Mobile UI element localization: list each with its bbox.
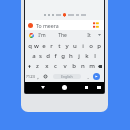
staticText: p xyxy=(97,42,101,50)
button[interactable]: More suggestions xyxy=(95,30,103,40)
staticText: q xyxy=(28,42,32,50)
button[interactable]: It xyxy=(83,30,95,40)
button[interactable]: c xyxy=(51,61,60,71)
staticText: . xyxy=(87,73,89,81)
staticText: a xyxy=(32,52,36,60)
button[interactable]: Space xyxy=(53,74,81,79)
staticText: x xyxy=(45,62,49,70)
staticText: h xyxy=(69,52,73,60)
button[interactable]: i xyxy=(79,40,87,51)
button[interactable]: , xyxy=(34,71,41,82)
button[interactable]: e xyxy=(40,40,47,51)
staticText: o xyxy=(89,42,93,50)
button[interactable]: x xyxy=(42,61,51,71)
button[interactable]: g xyxy=(59,51,67,61)
button[interactable]: The xyxy=(56,30,68,40)
staticText: c xyxy=(54,62,57,70)
staticText: e xyxy=(42,42,46,50)
button[interactable]: Recents xyxy=(81,82,92,93)
button[interactable]: v xyxy=(60,61,69,71)
staticText: To meera xyxy=(36,22,59,29)
staticText: d xyxy=(46,52,50,60)
button[interactable]: j xyxy=(75,51,83,61)
button[interactable]: Home xyxy=(59,82,70,93)
button[interactable]: f xyxy=(51,51,59,61)
button[interactable]: Backspace xyxy=(96,61,103,71)
staticText: g xyxy=(61,52,65,60)
button[interactable]: Emoji xyxy=(42,71,49,82)
staticText: n xyxy=(81,62,85,70)
button[interactable]: Back xyxy=(37,82,48,93)
staticText: b xyxy=(72,62,76,70)
button[interactable]: . xyxy=(85,71,91,82)
staticText: ?123 xyxy=(26,74,35,80)
button[interactable]: k xyxy=(83,51,91,61)
staticText: s xyxy=(39,52,42,60)
button[interactable]: To meera xyxy=(25,20,104,30)
staticText: English xyxy=(61,74,73,79)
staticText: The xyxy=(58,32,67,39)
button[interactable]: z xyxy=(33,61,42,71)
button[interactable]: d xyxy=(44,51,51,61)
button[interactable]: b xyxy=(69,61,78,71)
button[interactable]: w xyxy=(33,40,40,51)
staticText: v xyxy=(63,62,67,70)
button[interactable]: a xyxy=(30,51,37,61)
staticText: l xyxy=(94,52,96,60)
button[interactable]: n xyxy=(78,61,87,71)
staticText: u xyxy=(73,42,77,50)
staticText: y xyxy=(65,42,69,50)
staticText: i xyxy=(82,42,84,50)
staticText: I'm xyxy=(38,32,46,39)
staticText: k xyxy=(85,52,89,60)
staticText: z xyxy=(36,62,39,70)
button[interactable]: o xyxy=(87,40,95,51)
staticText: m xyxy=(89,62,95,70)
staticText: f xyxy=(54,52,57,60)
button[interactable]: q xyxy=(26,40,33,51)
button[interactable]: More options xyxy=(92,21,100,29)
button[interactable]: t xyxy=(55,40,63,51)
button[interactable]: ?123 xyxy=(26,71,35,82)
staticText: r xyxy=(50,42,53,50)
button[interactable]: Shift xyxy=(26,61,33,71)
button[interactable]: I'm xyxy=(36,30,48,40)
button[interactable]: s xyxy=(37,51,44,61)
staticText: w xyxy=(34,42,39,50)
button[interactable]: u xyxy=(71,40,79,51)
staticText: It xyxy=(87,32,91,39)
button[interactable]: Send xyxy=(93,73,100,80)
button[interactable]: Switch keyboard xyxy=(93,82,104,93)
staticText: , xyxy=(37,73,39,81)
button[interactable]: h xyxy=(67,51,75,61)
button[interactable]: p xyxy=(95,40,103,51)
staticText: j xyxy=(78,52,80,60)
button[interactable]: r xyxy=(47,40,55,51)
button[interactable]: l xyxy=(91,51,99,61)
button[interactable]: m xyxy=(87,61,96,71)
button[interactable]: y xyxy=(63,40,71,51)
staticText: t xyxy=(58,42,61,50)
button[interactable]: Google xyxy=(26,30,36,40)
